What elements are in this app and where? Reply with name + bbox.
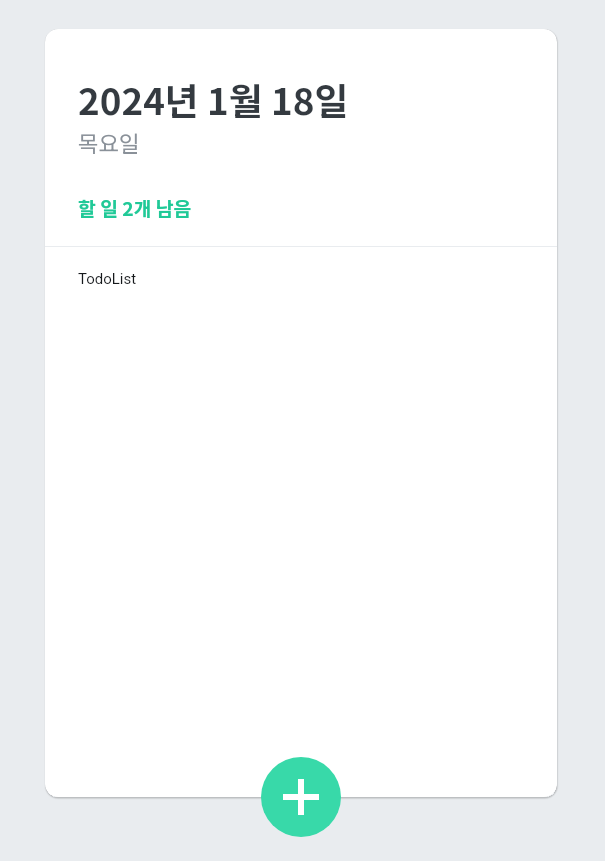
staticText: 목요일 bbox=[78, 126, 140, 158]
button[interactable]: TodoList bbox=[45, 249, 557, 309]
button[interactable]: Add todo bbox=[261, 757, 341, 837]
staticText: 2024년 1월 18일 bbox=[78, 72, 349, 125]
staticText: 할 일 2개 남음 bbox=[78, 194, 192, 222]
staticText: TodoList bbox=[78, 270, 137, 288]
